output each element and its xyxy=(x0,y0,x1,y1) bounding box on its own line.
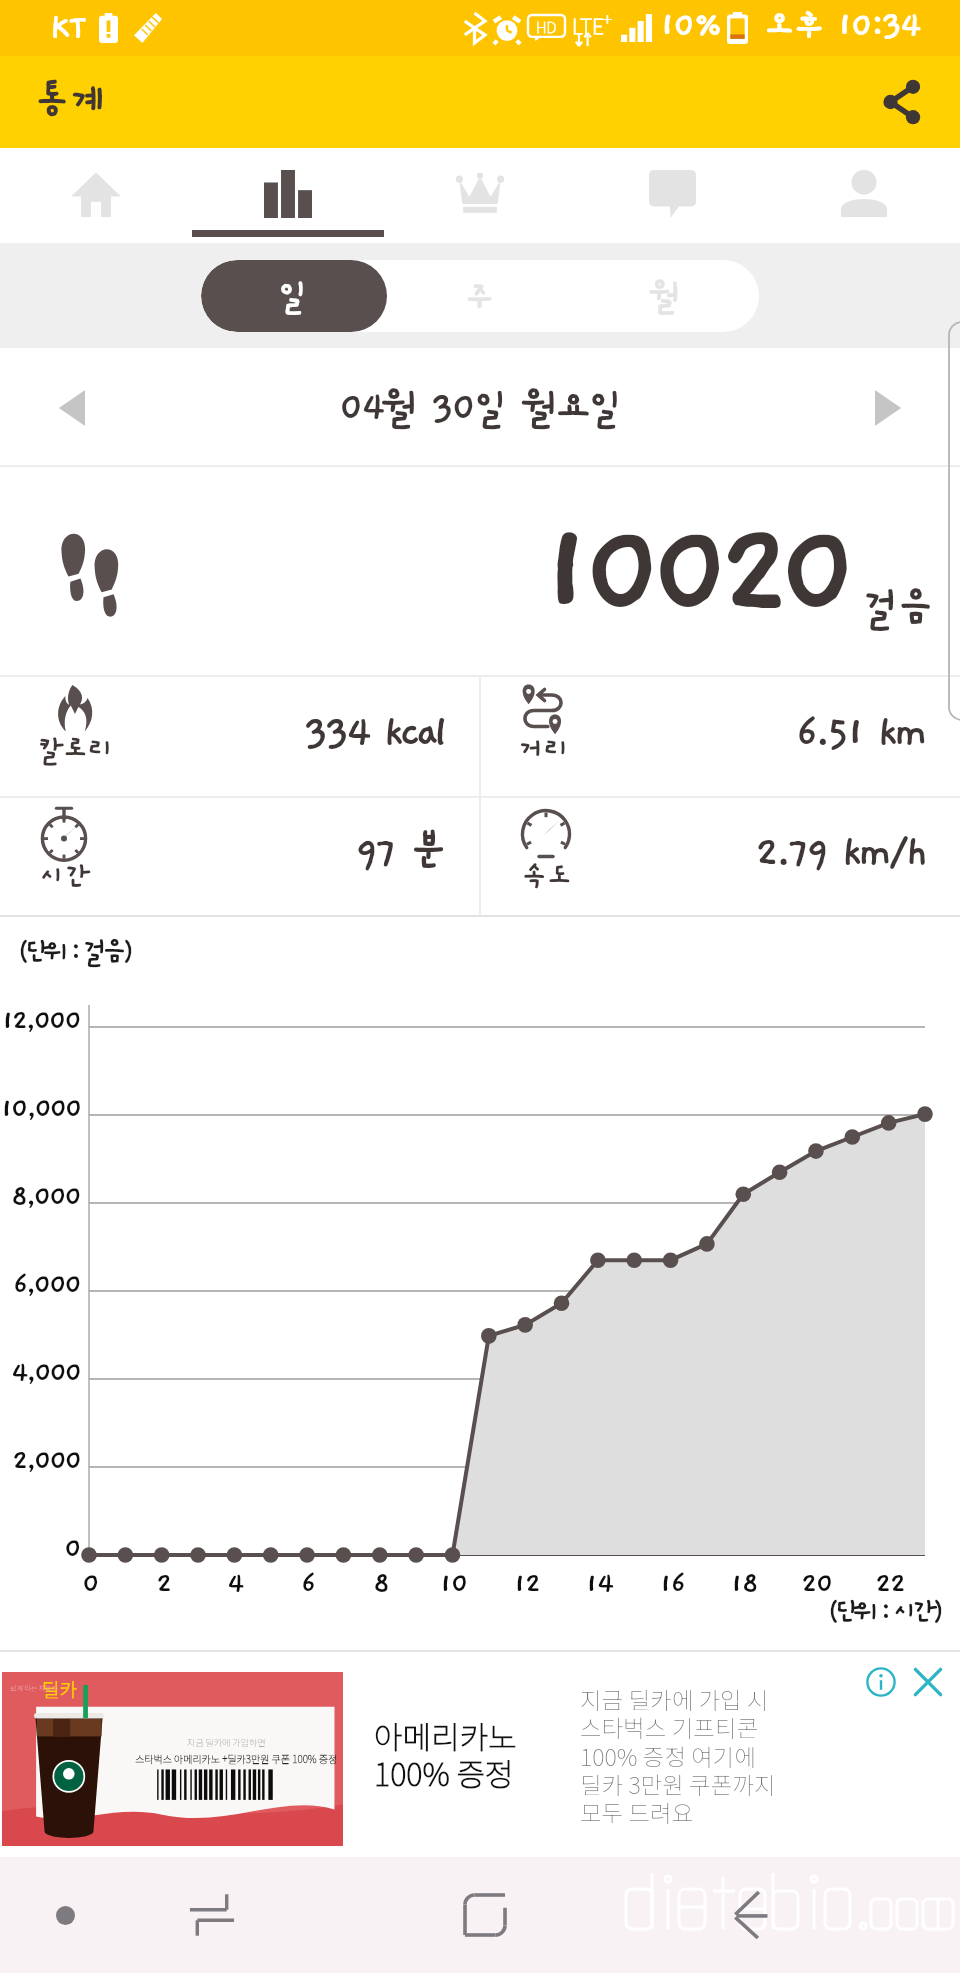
staticText: 쉽게 타는 자동차 xyxy=(10,1683,59,1693)
staticText: 100% 증정 xyxy=(374,1750,514,1795)
staticText: 20 xyxy=(801,1568,833,1600)
staticText: 월 xyxy=(650,277,682,315)
button[interactable]: 주 xyxy=(387,260,573,332)
button[interactable]: 칼로리 xyxy=(0,677,479,796)
staticText: 걸음 xyxy=(862,585,932,631)
staticText: 6 xyxy=(301,1568,315,1600)
button[interactable]: Profile xyxy=(768,148,960,243)
button[interactable]: Recents xyxy=(172,1875,252,1955)
staticText: 22 xyxy=(875,1568,905,1600)
staticText: KT xyxy=(50,9,85,47)
staticText: 4 xyxy=(227,1568,243,1600)
staticText: 아메리카노 xyxy=(374,1713,517,1758)
button[interactable]: 딜카 xyxy=(0,1650,960,1857)
staticText: 100% 증정 여기에 xyxy=(580,1739,756,1773)
button[interactable]: Ad info xyxy=(864,1665,898,1699)
staticText: 0 xyxy=(82,1568,99,1600)
button[interactable]: 월 xyxy=(573,260,759,332)
staticText: 지금 딜카에 가입 시 xyxy=(580,1682,769,1716)
staticText: (단위 : 걸음) xyxy=(17,936,129,967)
button[interactable]: 시간 xyxy=(0,798,479,915)
staticText: 칼로리 xyxy=(37,734,113,766)
staticText: 딜카 3만원 쿠폰까지 xyxy=(580,1767,776,1801)
staticText: LTE xyxy=(572,10,604,40)
staticText: 스타벅스 아메리카노 +딜카3만원 쿠폰 100% 증정 xyxy=(135,1751,338,1765)
staticText: 오후 10:34 xyxy=(763,6,919,46)
staticText: 시간 xyxy=(39,861,90,893)
staticText: 6.51 km xyxy=(796,709,925,756)
staticText: 18 xyxy=(730,1568,758,1600)
staticText: 97 분 xyxy=(355,829,444,876)
staticText: 12,000 xyxy=(1,1005,80,1037)
staticText: 334 kcal xyxy=(304,709,444,756)
button[interactable]: 일 xyxy=(201,260,387,332)
button[interactable]: Home xyxy=(445,1875,525,1955)
staticText: 속도 xyxy=(521,861,572,893)
staticText: 딜카 xyxy=(42,1675,77,1703)
staticText: 8 xyxy=(373,1568,389,1600)
staticText: 8,000 xyxy=(11,1181,80,1213)
staticText: 주 xyxy=(464,277,496,315)
button[interactable]: Chat xyxy=(576,148,768,243)
staticText: 6,000 xyxy=(13,1269,80,1301)
staticText: 04월 30일 월요일 xyxy=(339,386,622,430)
staticText: 10,000 xyxy=(0,1093,80,1125)
button[interactable]: Back xyxy=(715,1875,795,1955)
staticText: (단위 : 시간) xyxy=(827,1596,939,1627)
staticText: 10020 xyxy=(536,499,846,645)
staticText: HD xyxy=(536,16,557,38)
staticText: 스타벅스 기프티콘 xyxy=(580,1710,759,1744)
staticText: 지금 딜카에 가입하면 xyxy=(187,1736,266,1749)
button[interactable]: Home xyxy=(0,148,192,243)
staticText: 모두 드려요 xyxy=(580,1795,694,1829)
staticText: 2 xyxy=(156,1568,171,1600)
staticText: 4,000 xyxy=(11,1357,80,1389)
staticText: 2,000 xyxy=(12,1445,80,1477)
button[interactable]: Statistics xyxy=(192,148,384,243)
button[interactable]: Previous day xyxy=(40,376,104,440)
button[interactable]: Close ad xyxy=(910,1664,946,1700)
staticText: 일 xyxy=(278,277,310,315)
button[interactable]: Menu xyxy=(25,1875,105,1955)
staticText: 10% xyxy=(659,6,721,46)
button[interactable]: Next day xyxy=(856,376,920,440)
staticText: 16 xyxy=(659,1568,685,1600)
staticText: 거리 xyxy=(518,734,569,766)
staticText: 12 xyxy=(513,1568,540,1600)
staticText: 2.79 km/h xyxy=(755,829,925,876)
button[interactable]: Share xyxy=(864,64,940,140)
button[interactable]: 거리 xyxy=(481,677,960,796)
staticText: + xyxy=(603,6,612,31)
staticText: 14 xyxy=(585,1568,613,1600)
button[interactable]: 속도 xyxy=(481,798,960,915)
button[interactable]: Ranking xyxy=(384,148,576,243)
staticText: 통계 xyxy=(34,80,107,124)
staticText: 10 xyxy=(439,1568,468,1600)
staticText: 0 xyxy=(64,1533,80,1565)
